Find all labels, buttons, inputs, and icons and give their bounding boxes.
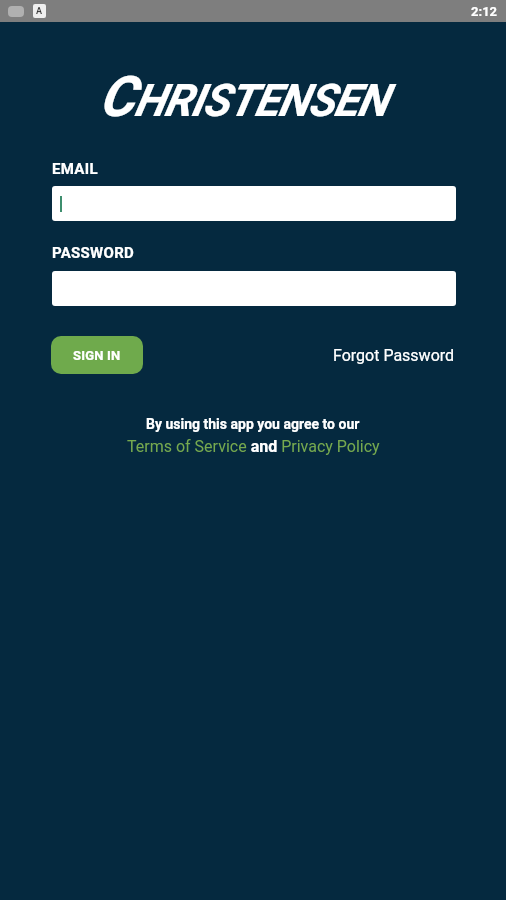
staticText: 2:12 (471, 4, 498, 19)
staticText: A (36, 6, 43, 17)
staticText: Terms of Service and Privacy Policy (127, 437, 380, 456)
staticText: Forgot Password (333, 346, 455, 365)
button[interactable] (52, 271, 456, 306)
button[interactable] (52, 186, 456, 221)
staticText: By using this app you agree to our (146, 416, 360, 432)
button[interactable]: SIGN IN (51, 336, 143, 374)
staticText: C (99, 64, 134, 130)
button[interactable]: Terms of Service and Privacy Policy (127, 437, 380, 456)
staticText: PASSWORD (52, 244, 135, 262)
button[interactable]: Forgot Password (333, 346, 455, 365)
staticText: HRISTENSEN (134, 74, 387, 127)
staticText: EMAIL (52, 160, 98, 178)
staticText: SIGN IN (73, 348, 121, 363)
